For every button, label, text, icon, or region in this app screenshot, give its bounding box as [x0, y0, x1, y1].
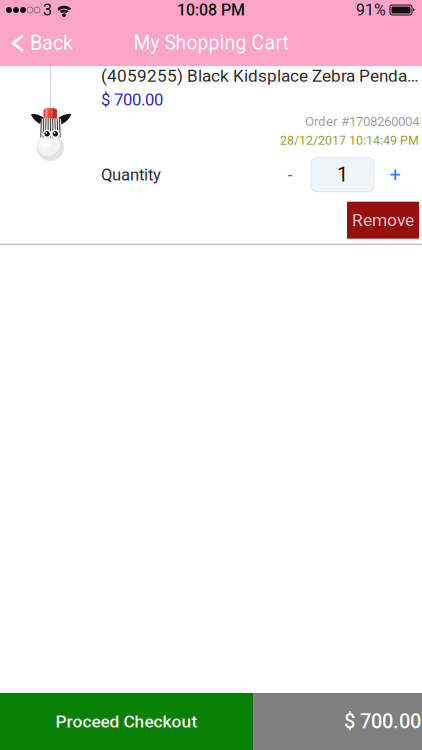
staticText: 1 [337, 163, 348, 186]
button[interactable]: Remove [347, 202, 419, 239]
button[interactable]: Increase quantity [382, 158, 408, 192]
staticText: (4059255) Black Kidsplace Zebra Pendant [101, 66, 421, 86]
staticText: 10:08 PM [177, 1, 245, 19]
staticText: My Shopping Cart [133, 32, 288, 54]
button[interactable]: Proceed Checkout [0, 693, 253, 750]
staticText: Back [30, 31, 73, 55]
staticText: 28/12/2017 10:14:49 PM [280, 133, 419, 148]
staticText: + [389, 163, 400, 186]
button[interactable]: Decrease quantity [277, 158, 303, 192]
staticText: $ 700.00 [344, 710, 421, 733]
staticText: Proceed Checkout [55, 711, 197, 732]
staticText: Remove [352, 210, 414, 230]
staticText: 91% [356, 1, 386, 19]
staticText: - [287, 164, 292, 186]
staticText: 3 [43, 1, 52, 19]
staticText: Quantity [101, 165, 161, 184]
staticText: Order #1708260004 [305, 113, 419, 129]
staticText: $ 700.00 [101, 90, 163, 109]
button[interactable]: Back [0, 21, 83, 65]
button[interactable]: Cart total $ 700.00 [253, 693, 422, 750]
